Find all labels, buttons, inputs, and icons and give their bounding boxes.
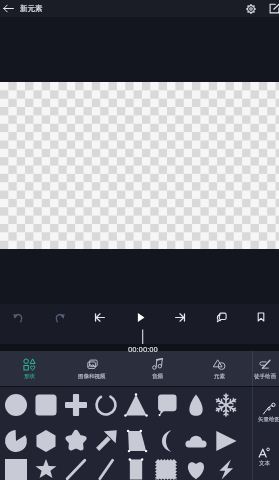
button[interactable]: 文本: [258, 447, 270, 467]
button[interactable]: 音频: [125, 351, 189, 386]
button[interactable]: Redo: [44, 304, 74, 330]
button[interactable]: Shape 0: [1, 387, 31, 423]
button[interactable]: Shape 21: [151, 459, 181, 480]
button[interactable]: Shape 18: [61, 459, 91, 480]
button[interactable]: Shape 19: [91, 459, 121, 480]
button[interactable]: Shape 23: [211, 459, 241, 480]
button[interactable]: Shape 13: [151, 423, 181, 459]
button[interactable]: 矢量绘图: [258, 402, 279, 423]
staticText: 文本: [259, 460, 270, 467]
button[interactable]: Shape 1: [31, 387, 61, 423]
staticText: 形状: [24, 373, 35, 380]
button[interactable]: 形状: [0, 351, 59, 386]
button[interactable]: Shape 15: [211, 423, 241, 459]
button[interactable]: Shape 3: [91, 387, 121, 423]
button[interactable]: 元素: [189, 351, 250, 386]
staticText: 新元素: [20, 4, 43, 13]
staticText: 矢量绘图: [258, 416, 279, 423]
button[interactable]: Shape 7: [211, 387, 241, 423]
button[interactable]: Shape 16: [1, 459, 31, 480]
button[interactable]: Shape 17: [31, 459, 61, 480]
staticText: 00:00:00: [128, 344, 158, 354]
button[interactable]: Shape 2: [61, 387, 91, 423]
button[interactable]: Shape 20: [121, 459, 151, 480]
button[interactable]: Shape 6: [181, 387, 211, 423]
button[interactable]: Shape 8: [1, 423, 31, 459]
button[interactable]: Undo: [3, 304, 33, 330]
button[interactable]: Shape 12: [121, 423, 151, 459]
button[interactable]: Export: [265, 0, 279, 17]
button[interactable]: 图像和视频: [59, 351, 125, 386]
button[interactable]: Play: [125, 304, 155, 330]
staticText: 元素: [214, 373, 225, 380]
button[interactable]: Shape 11: [91, 423, 121, 459]
button[interactable]: Loop: [206, 304, 236, 330]
button[interactable]: Shape 14: [181, 423, 211, 459]
staticText: 音频: [152, 373, 163, 380]
button[interactable]: Settings: [241, 0, 261, 17]
button[interactable]: Bookmark: [246, 304, 276, 330]
button[interactable]: Back: [0, 0, 16, 17]
staticText: 图像和视频: [78, 373, 106, 380]
button[interactable]: Shape 22: [181, 459, 211, 480]
button[interactable]: Shape 10: [61, 423, 91, 459]
button[interactable]: 徒手绘画: [250, 351, 279, 386]
button[interactable]: Shape 4: [121, 387, 151, 423]
staticText: 徒手绘画: [254, 373, 276, 380]
button[interactable]: Skip to end: [165, 304, 195, 330]
button[interactable]: Skip to start: [84, 304, 114, 330]
button[interactable]: Shape 9: [31, 423, 61, 459]
button[interactable]: Shape 5: [151, 387, 181, 423]
